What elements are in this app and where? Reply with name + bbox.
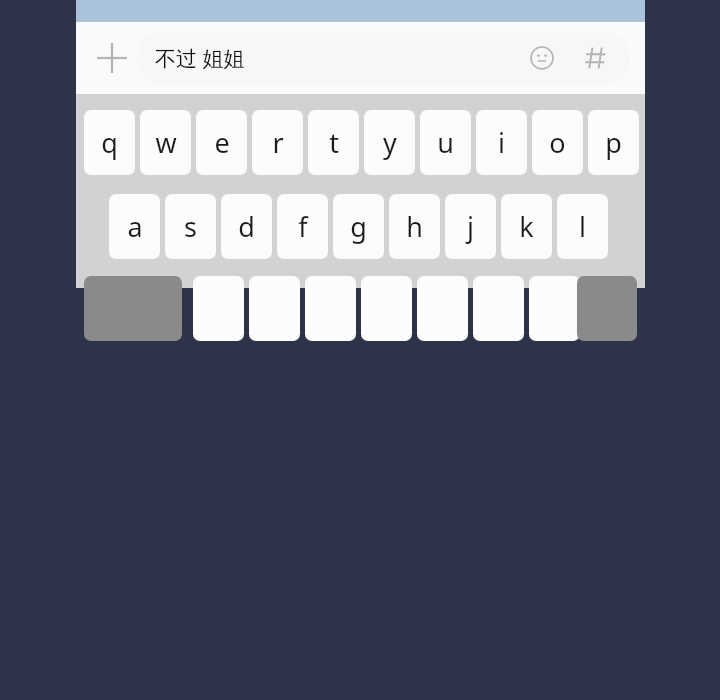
staticText: h	[406, 208, 423, 245]
staticText: y	[383, 124, 397, 161]
button[interactable]: y	[364, 110, 415, 175]
button[interactable]: Add attachment	[82, 28, 142, 88]
button[interactable]: Key	[193, 276, 244, 341]
staticText: o	[549, 124, 566, 161]
button[interactable]: Key	[529, 276, 580, 341]
button[interactable]: f	[277, 194, 328, 259]
button[interactable]: i	[476, 110, 527, 175]
staticText: f	[298, 208, 308, 245]
button[interactable]: u	[420, 110, 471, 175]
button[interactable]: 不过 姐姐	[137, 32, 630, 84]
staticText: 不过 姐姐	[155, 44, 245, 73]
staticText: i	[498, 124, 505, 161]
button[interactable]: t	[308, 110, 359, 175]
staticText: p	[605, 124, 622, 161]
button[interactable]: Backspace	[577, 276, 637, 341]
button[interactable]: Shift	[84, 276, 182, 341]
button[interactable]: k	[501, 194, 552, 259]
button[interactable]: Key	[305, 276, 356, 341]
staticText: s	[184, 208, 197, 245]
staticText: g	[350, 208, 367, 245]
button[interactable]: d	[221, 194, 272, 259]
staticText: q	[101, 124, 118, 161]
button[interactable]: p	[588, 110, 639, 175]
button[interactable]: a	[109, 194, 160, 259]
staticText: a	[127, 208, 143, 245]
staticText: j	[467, 208, 474, 245]
staticText: l	[579, 208, 586, 245]
button[interactable]: j	[445, 194, 496, 259]
button[interactable]: h	[389, 194, 440, 259]
button[interactable]: Key	[417, 276, 468, 341]
button[interactable]: Emoji	[522, 38, 562, 78]
button[interactable]: r	[252, 110, 303, 175]
staticText: r	[272, 124, 284, 161]
button[interactable]: g	[333, 194, 384, 259]
button[interactable]: l	[557, 194, 608, 259]
button[interactable]: Tag	[574, 36, 618, 80]
staticText: u	[437, 124, 454, 161]
staticText: w	[155, 124, 177, 161]
button[interactable]: e	[196, 110, 247, 175]
button[interactable]: o	[532, 110, 583, 175]
staticText: d	[238, 208, 255, 245]
button[interactable]: w	[140, 110, 191, 175]
button[interactable]: Key	[249, 276, 300, 341]
button[interactable]: Key	[361, 276, 412, 341]
button[interactable]: Key	[473, 276, 524, 341]
staticText: t	[329, 124, 339, 161]
staticText: k	[519, 208, 534, 245]
button[interactable]: q	[84, 110, 135, 175]
button[interactable]: s	[165, 194, 216, 259]
staticText: e	[214, 124, 230, 161]
